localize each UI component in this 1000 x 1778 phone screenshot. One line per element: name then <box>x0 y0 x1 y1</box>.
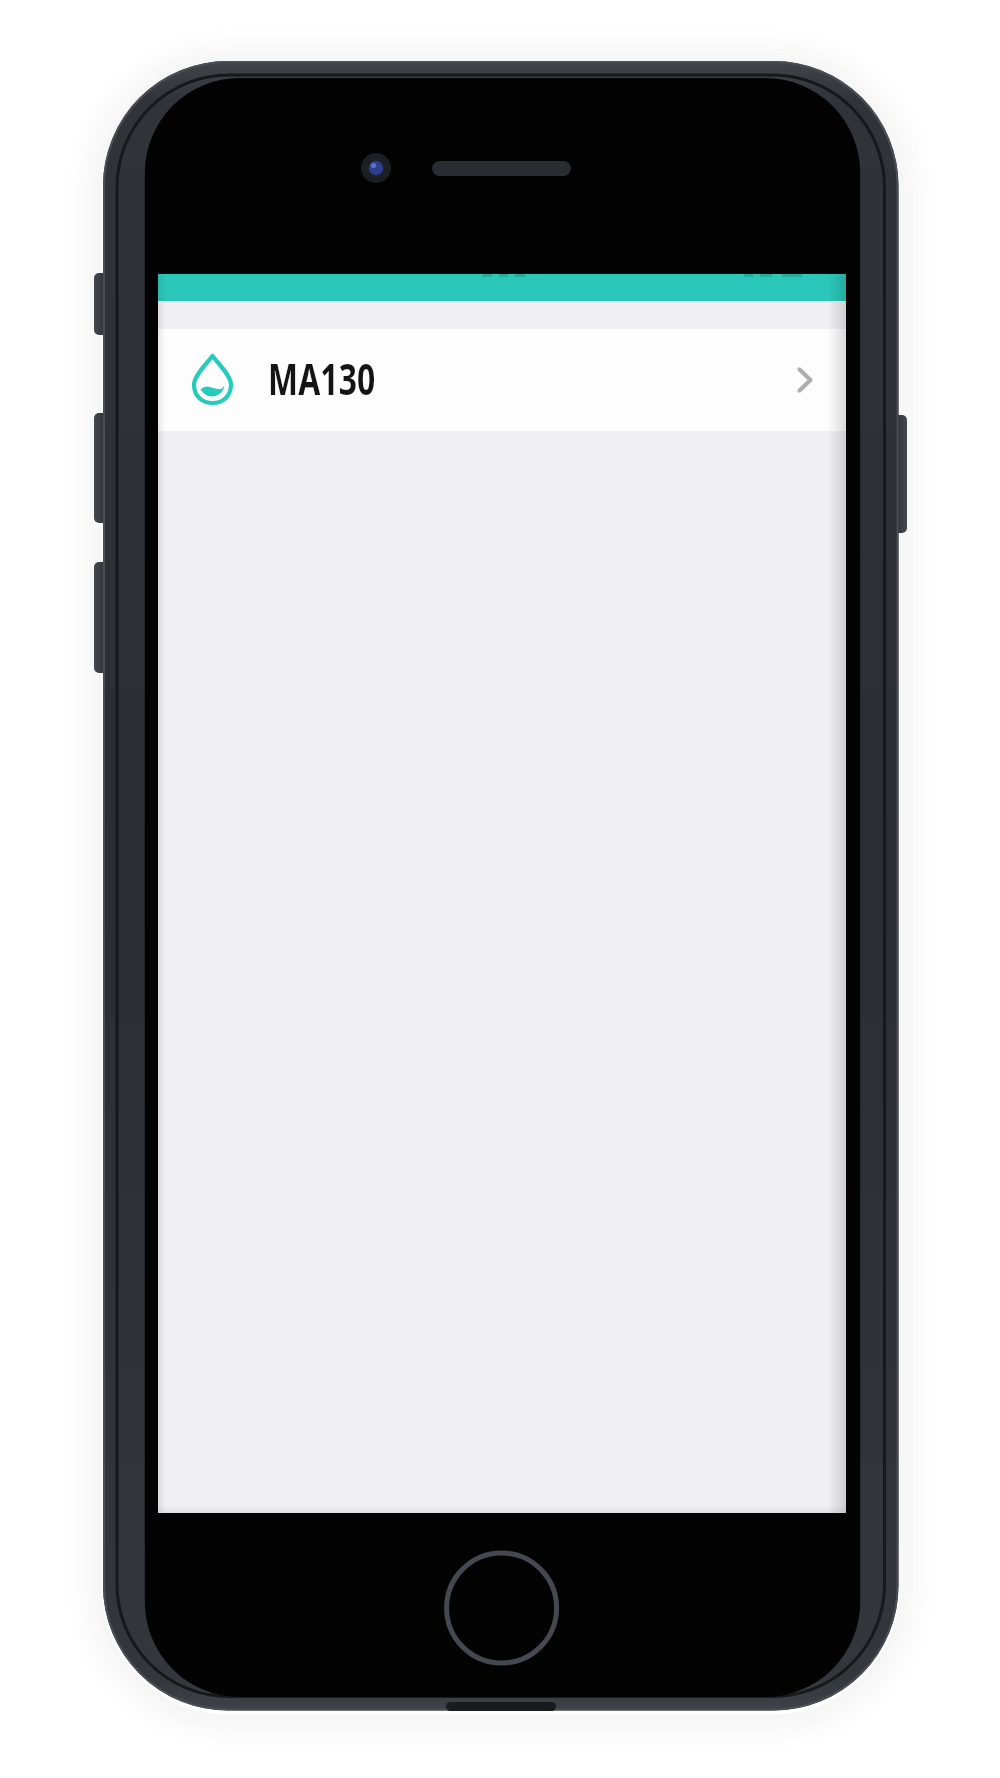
staticText: MA130 <box>268 349 376 408</box>
button[interactable]: MA130 <box>158 329 846 431</box>
